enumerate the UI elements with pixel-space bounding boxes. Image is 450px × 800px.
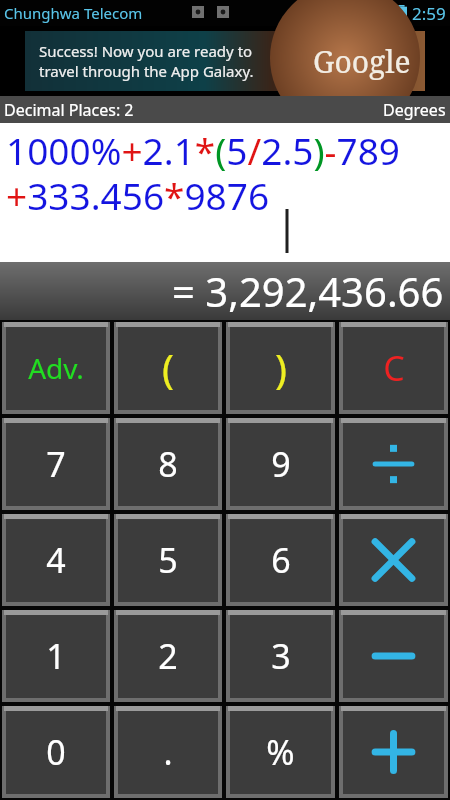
button[interactable]: 1000%+2.1*(5/2.5)-789 +333.456*9876 (0, 123, 450, 262)
button[interactable]: 7 (2, 418, 110, 510)
button[interactable]: ( (114, 322, 222, 414)
staticText: ( (162, 341, 174, 395)
staticText: 8 (158, 441, 178, 487)
button[interactable]: % (226, 706, 335, 798)
button[interactable] (339, 514, 448, 606)
staticText: Adv. (28, 349, 84, 387)
staticText: % (266, 729, 295, 775)
button[interactable]: 8 (114, 418, 222, 510)
button[interactable]: 9 (226, 418, 335, 510)
staticText: 0 (46, 729, 66, 775)
staticText: 6 (271, 537, 291, 583)
button[interactable]: 2 (114, 610, 222, 702)
staticText: 1 (46, 633, 66, 679)
button[interactable] (339, 418, 448, 510)
staticText: 1000%+2.1*(5/2.5)-789 +333.456*9876 (6, 125, 400, 221)
staticText: 5 (158, 537, 178, 583)
staticText: Chunghwa Telecom (4, 3, 143, 23)
button[interactable]: Advertisement (25, 31, 425, 91)
staticText: . (163, 729, 173, 775)
button[interactable]: 0 (2, 706, 110, 798)
staticText: ) (275, 341, 287, 395)
button[interactable]: 3 (226, 610, 335, 702)
staticText: 9 (271, 441, 291, 487)
button[interactable]: 1 (2, 610, 110, 702)
staticText: 3G (362, 7, 375, 21)
staticText: travel through the App Galaxy. (39, 61, 254, 81)
staticText: 2 (158, 633, 178, 679)
button[interactable]: C (339, 322, 448, 414)
button[interactable]: Adv. (2, 322, 110, 414)
staticText: 7 (46, 441, 66, 487)
staticText: C (383, 345, 405, 391)
button[interactable]: 6 (226, 514, 335, 606)
button[interactable]: ) (226, 322, 335, 414)
button[interactable] (339, 706, 448, 798)
staticText: = 3,292,436.66 (172, 264, 444, 318)
staticText: 3 (271, 633, 291, 679)
staticText: 4 (46, 537, 66, 583)
button[interactable]: Decimal Places: 2 (4, 99, 134, 121)
staticText: 2:59 (412, 2, 446, 25)
button[interactable] (339, 610, 448, 702)
staticText: Google (313, 41, 411, 82)
button[interactable]: 4 (2, 514, 110, 606)
staticText: Success! Now you are ready to (39, 41, 253, 61)
button[interactable]: . (114, 706, 222, 798)
button[interactable]: Degrees (383, 99, 446, 121)
button[interactable]: 5 (114, 514, 222, 606)
